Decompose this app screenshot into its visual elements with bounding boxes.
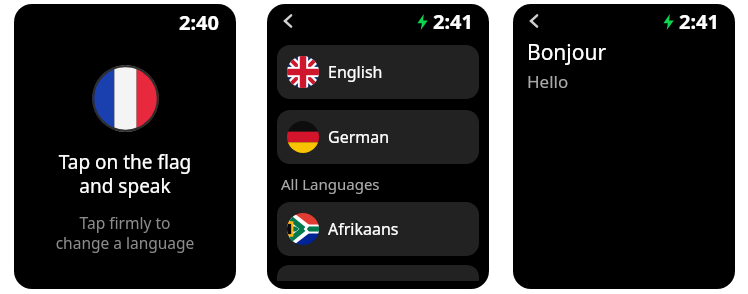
button[interactable] [277, 265, 479, 281]
staticText: 2:41 [433, 8, 473, 35]
button[interactable]: Back [521, 8, 547, 34]
staticText: English [328, 61, 383, 83]
staticText: 2:40 [179, 9, 219, 36]
staticText: 2:41 [679, 8, 719, 35]
staticText: All Languages [281, 174, 380, 194]
button[interactable]: English [277, 45, 479, 99]
staticText: German [328, 126, 390, 148]
staticText: Hello [527, 70, 569, 93]
button[interactable]: French flag, tap to speak [92, 65, 159, 132]
staticText: Afrikaans [328, 218, 399, 240]
button[interactable]: Afrikaans [277, 202, 479, 256]
button[interactable]: Back [275, 8, 301, 34]
staticText: Bonjour [527, 38, 607, 67]
staticText: Tap on the flag and speak [14, 149, 236, 198]
staticText: Tap firmly to change a language [14, 212, 236, 253]
button[interactable]: German [277, 110, 479, 164]
